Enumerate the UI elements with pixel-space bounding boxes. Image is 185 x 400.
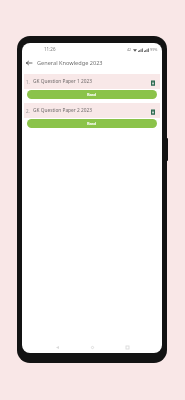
staticText: GK Question Paper 2 2023 bbox=[33, 107, 92, 114]
button[interactable]: 2. bbox=[24, 103, 160, 118]
staticText: 1. bbox=[26, 79, 30, 85]
staticText: GK Question Paper 1 2023 bbox=[33, 78, 92, 85]
button[interactable]: Back bbox=[23, 57, 35, 69]
button[interactable]: Download PDF bbox=[151, 109, 155, 115]
button[interactable]: Recent apps bbox=[122, 342, 132, 352]
button[interactable]: Back bbox=[52, 342, 62, 352]
button[interactable]: Read bbox=[27, 119, 157, 128]
staticText: 2. bbox=[26, 108, 30, 114]
button[interactable]: Read bbox=[27, 90, 157, 99]
staticText: Read bbox=[87, 121, 97, 126]
staticText: 99% bbox=[150, 47, 158, 52]
button[interactable]: 1. bbox=[24, 74, 160, 89]
staticText: Read bbox=[87, 92, 97, 97]
staticText: 42 bbox=[127, 47, 132, 52]
staticText: 11:26 bbox=[44, 46, 56, 52]
button[interactable]: Download PDF bbox=[151, 80, 155, 86]
staticText: General Knowledge 2023 bbox=[37, 59, 103, 67]
button[interactable]: Home bbox=[87, 342, 97, 352]
